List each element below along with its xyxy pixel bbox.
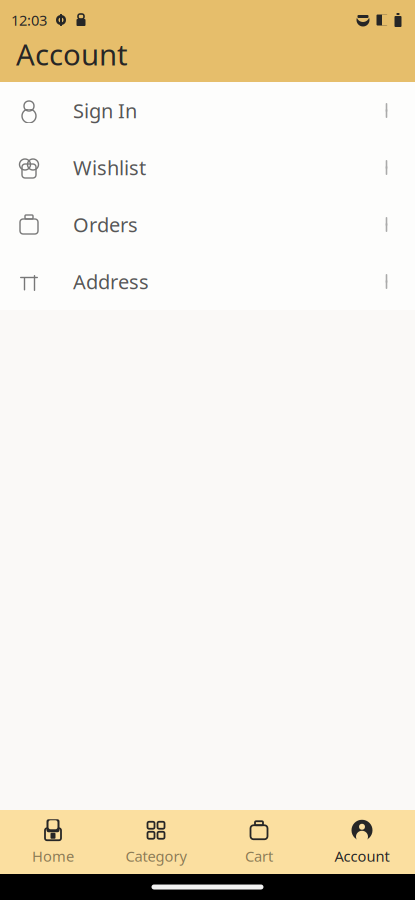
staticText: 12:03 (11, 10, 47, 30)
button[interactable]: Cart (207, 810, 310, 874)
staticText: Address (73, 268, 149, 295)
button[interactable]: Account (310, 810, 413, 874)
staticText: Orders (73, 211, 138, 238)
staticText: Home (32, 846, 74, 866)
button[interactable]: Sign In (0, 82, 415, 139)
button[interactable]: Orders (0, 196, 415, 253)
staticText: Cart (245, 846, 273, 866)
staticText: Wishlist (73, 154, 146, 181)
button[interactable]: Home (1, 810, 104, 874)
button[interactable]: Category (104, 810, 207, 874)
staticText: Category (125, 846, 186, 866)
staticText: Sign In (73, 97, 137, 124)
staticText: Account (334, 846, 389, 866)
button[interactable]: Wishlist (0, 139, 415, 196)
button[interactable]: Address (0, 253, 415, 310)
staticText: Account (16, 34, 128, 73)
